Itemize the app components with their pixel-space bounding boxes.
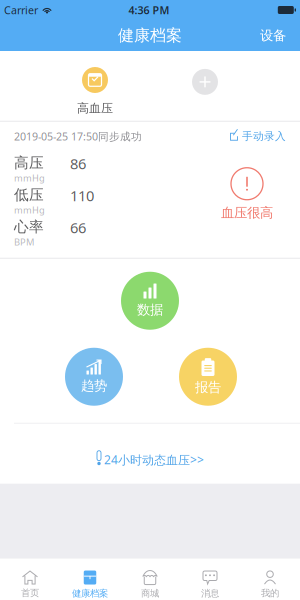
button[interactable]: 我的	[240, 559, 300, 600]
button[interactable]: 消息	[180, 558, 240, 600]
staticText: 商城	[141, 587, 159, 599]
staticText: 24小时动态血压>>	[104, 452, 204, 468]
button[interactable]: 商城	[120, 558, 180, 600]
staticText: 健康档案	[72, 587, 108, 599]
staticText: 数据	[137, 302, 163, 318]
staticText: mmHg	[14, 172, 45, 184]
staticText: 4:36 PM	[128, 3, 169, 17]
staticText: 健康档案	[118, 26, 182, 45]
staticText: 2019-05-25 17:50同步成功	[14, 129, 142, 143]
staticText: 110	[70, 186, 94, 205]
button[interactable]: 24小时动态血压>>	[0, 424, 300, 484]
button[interactable]: 高血压	[71, 67, 119, 116]
button[interactable]: Add record type	[181, 69, 229, 114]
staticText: 首页	[21, 587, 39, 598]
staticText: 设备	[260, 27, 286, 44]
staticText: 高血压	[77, 101, 113, 116]
staticText: mmHg	[14, 204, 45, 216]
staticText: 86	[70, 154, 86, 173]
staticText: 我的	[261, 587, 279, 599]
staticText: Carrier	[4, 3, 38, 17]
staticText: 报告	[195, 379, 221, 395]
button[interactable]: 健康档案	[60, 558, 120, 600]
button[interactable]: 数据	[121, 272, 179, 330]
button[interactable]: 手动录入	[230, 126, 286, 147]
staticText: 高压	[14, 154, 44, 172]
staticText: 血压很高	[221, 205, 273, 221]
button[interactable]: 首页	[0, 559, 60, 599]
staticText: 66	[70, 218, 86, 237]
staticText: BPM	[14, 236, 34, 248]
staticText: 趋势	[81, 378, 107, 394]
staticText: 低压	[14, 186, 44, 204]
button[interactable]: 设备	[246, 20, 300, 51]
button[interactable]: 报告	[179, 348, 237, 406]
button[interactable]: 趋势	[65, 348, 123, 406]
staticText: 消息	[201, 587, 219, 599]
staticText: 手动录入	[242, 130, 286, 143]
staticText: 心率	[14, 218, 44, 236]
